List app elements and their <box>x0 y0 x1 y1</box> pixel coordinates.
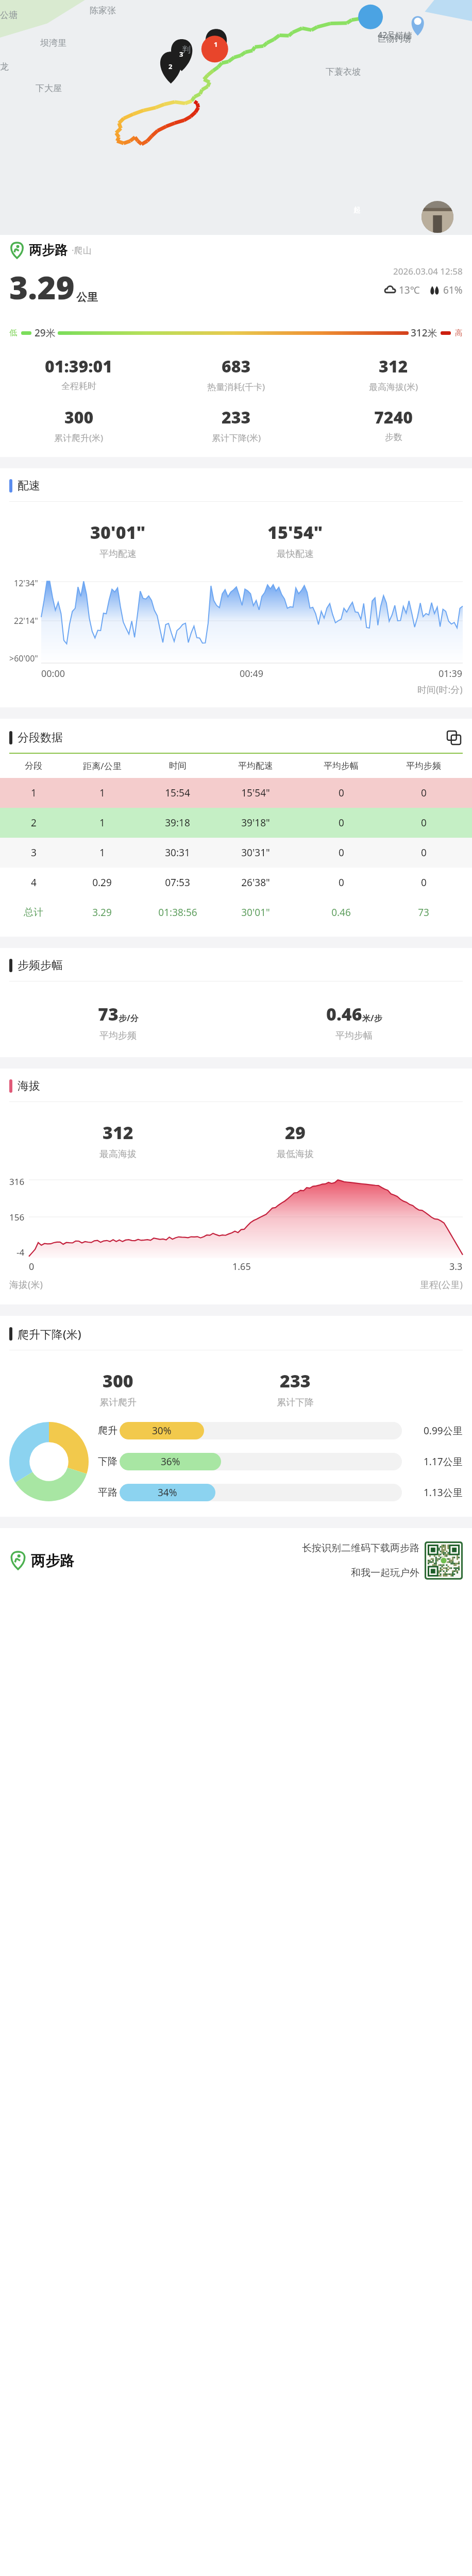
staticText: 公塘 <box>0 10 18 21</box>
staticText: 下大屋 <box>36 83 62 94</box>
staticText: 0.46 <box>326 1002 362 1026</box>
staticText: 3.29 <box>9 265 75 309</box>
staticText: 两步路 <box>31 1552 74 1570</box>
staticText: 30'01" <box>90 520 146 544</box>
staticText: 最高海拔 <box>99 1148 137 1160</box>
staticText: 233 <box>222 406 251 429</box>
staticText: 0 <box>421 846 427 859</box>
staticText: 1 <box>99 816 105 829</box>
staticText: 30% <box>152 1424 172 1437</box>
staticText: 判 <box>182 44 191 55</box>
staticText: 步频步幅 <box>18 958 63 973</box>
staticText: 01:38:56 <box>158 906 197 919</box>
staticText: 2 <box>31 816 37 829</box>
staticText: 15'54" <box>267 520 323 544</box>
staticText: 01:39 <box>439 667 463 680</box>
staticText: 39'18" <box>241 816 270 829</box>
staticText: 0 <box>339 846 344 859</box>
staticText: 683 <box>222 355 251 378</box>
staticText: 1 <box>99 786 105 800</box>
staticText: 时间(时:分) <box>417 683 463 696</box>
staticText: 00:49 <box>240 667 264 680</box>
staticText: 00:00 <box>41 667 65 680</box>
staticText: 1.17公里 <box>424 1455 463 1468</box>
staticText: 分段 <box>25 760 42 771</box>
staticText: 1 <box>214 40 218 49</box>
button[interactable]: 总计 <box>0 897 472 927</box>
staticText: 海拔(米) <box>9 1278 43 1291</box>
staticText: 29 <box>285 1121 306 1144</box>
staticText: 07:53 <box>165 876 190 889</box>
staticText: 30'01" <box>241 906 270 919</box>
staticText: 7240 <box>374 406 413 429</box>
staticText: 和我一起玩户外 <box>351 1567 419 1579</box>
staticText: 累计下降 <box>277 1397 314 1409</box>
button[interactable]: QR code <box>426 1543 461 1578</box>
staticText: 312 <box>379 355 408 378</box>
staticText: 累计下降(米) <box>212 432 261 444</box>
staticText: 平路 <box>98 1486 117 1499</box>
staticText: ·爬山 <box>72 244 92 256</box>
button[interactable]: 1 <box>0 778 472 808</box>
button[interactable]: 2 <box>0 808 472 838</box>
staticText: 爬升 <box>98 1425 117 1437</box>
staticText: 316 <box>9 1176 25 1188</box>
button[interactable]: 4 <box>0 868 472 897</box>
staticText: 起 <box>353 206 360 214</box>
staticText: 距离/公里 <box>83 760 122 772</box>
staticText: 步数 <box>385 432 402 443</box>
button[interactable]: 3 <box>0 838 472 868</box>
staticText: 36% <box>161 1455 180 1468</box>
staticText: 13℃ <box>399 283 420 297</box>
staticText: 最低海拔 <box>277 1148 314 1160</box>
staticText: 时间 <box>169 760 187 771</box>
staticText: 坝湾里 <box>40 38 66 48</box>
staticText: 1 <box>99 846 105 859</box>
staticText: 1.65 <box>232 1260 251 1273</box>
staticText: 配速 <box>18 479 40 493</box>
staticText: 0 <box>421 876 427 889</box>
staticText: 步/分 <box>119 1012 139 1024</box>
staticText: 61% <box>443 283 463 297</box>
staticText: 29米 <box>35 326 56 340</box>
staticText: 平均配速 <box>238 760 273 771</box>
staticText: 34% <box>158 1486 177 1499</box>
staticText: 22'14" <box>14 615 38 626</box>
staticText: 下蓑衣坡 <box>326 66 361 77</box>
staticText: 海拔 <box>18 1079 40 1093</box>
staticText: 平均步频 <box>99 1030 137 1042</box>
staticText: 15'54" <box>241 786 270 800</box>
staticText: 巨物钓场 <box>378 34 411 44</box>
staticText: 最快配速 <box>277 548 314 560</box>
staticText: 龙 <box>0 61 9 72</box>
staticText: 01:39:01 <box>45 355 113 378</box>
staticText: 全程耗时 <box>61 381 96 392</box>
staticText: 30:31 <box>165 846 190 859</box>
staticText: 42号鲢鳙 <box>378 29 412 41</box>
staticText: 0 <box>339 876 344 889</box>
staticText: 0 <box>339 816 344 829</box>
staticText: 下降 <box>98 1455 117 1468</box>
staticText: 156 <box>9 1211 25 1223</box>
staticText: 30'31" <box>241 846 270 859</box>
staticText: 3 <box>179 49 183 59</box>
staticText: 平均步幅 <box>335 1030 373 1042</box>
staticText: 总计 <box>24 906 43 919</box>
staticText: 2026.03.04 12:58 <box>393 265 463 277</box>
staticText: 233 <box>280 1369 311 1393</box>
staticText: 0 <box>421 816 427 829</box>
staticText: 爬升下降(米) <box>18 1326 81 1342</box>
staticText: 312米 <box>411 326 437 340</box>
staticText: 1.13公里 <box>424 1486 463 1499</box>
staticText: >60'00" <box>9 653 38 664</box>
staticText: 300 <box>64 406 94 429</box>
button[interactable]: Copy <box>445 729 463 747</box>
staticText: 累计爬升(米) <box>54 432 104 444</box>
staticText: 热量消耗(千卡) <box>207 381 265 393</box>
staticText: 73 <box>98 1002 119 1026</box>
staticText: 2 <box>168 62 173 71</box>
staticText: 米/步 <box>362 1012 382 1024</box>
staticText: 4 <box>31 876 37 889</box>
staticText: 73 <box>418 906 429 919</box>
staticText: 3.29 <box>92 906 112 919</box>
